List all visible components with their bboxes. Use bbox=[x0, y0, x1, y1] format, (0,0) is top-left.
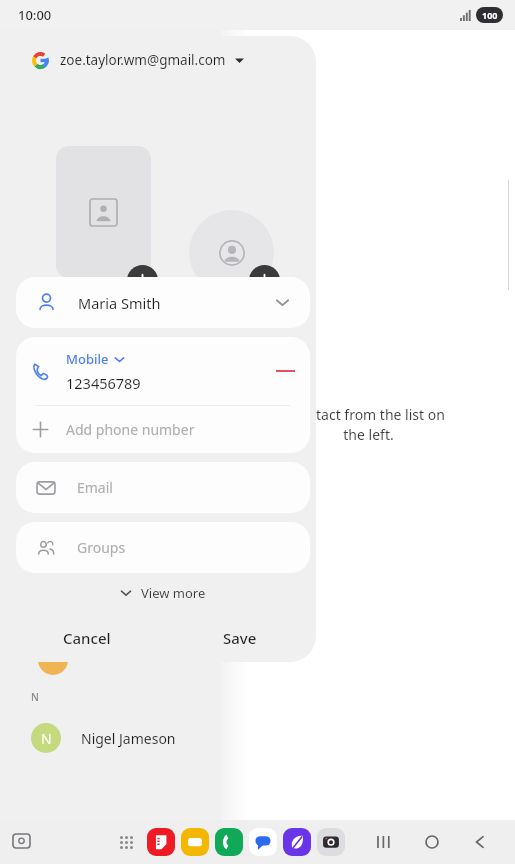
button[interactable]: App bbox=[249, 828, 277, 856]
staticText: Groups bbox=[77, 538, 126, 557]
button[interactable]: Maria Smith bbox=[16, 277, 310, 328]
staticText: Nigel Jameson bbox=[81, 729, 176, 748]
staticText: N bbox=[41, 729, 52, 748]
button[interactable]: Groups bbox=[16, 522, 310, 573]
button[interactable]: Mobile bbox=[16, 337, 310, 405]
button[interactable]: App bbox=[215, 828, 243, 856]
staticText: Add phone number bbox=[66, 420, 195, 439]
staticText: N bbox=[31, 690, 39, 704]
staticText: 100 bbox=[482, 9, 498, 21]
staticText: Mobile bbox=[66, 350, 109, 368]
button[interactable]: Recent apps preview bbox=[6, 827, 36, 857]
button[interactable]: Home bbox=[415, 825, 449, 859]
staticText: 10:00 bbox=[18, 6, 52, 24]
button[interactable]: Add phone number bbox=[16, 406, 310, 453]
staticText: Save bbox=[223, 628, 257, 648]
button[interactable]: Apps bbox=[111, 827, 141, 857]
staticText: Cancel bbox=[63, 628, 111, 648]
button[interactable]: App bbox=[147, 828, 175, 856]
button[interactable]: Add photo bbox=[127, 265, 158, 296]
button[interactable]: App bbox=[317, 828, 345, 856]
button[interactable]: Recents bbox=[367, 825, 401, 859]
button[interactable]: Add contact photo bbox=[56, 146, 151, 278]
button[interactable]: Back bbox=[463, 825, 497, 859]
button[interactable]: Save bbox=[163, 613, 316, 662]
staticText: zoe.taylor.wm@gmail.com bbox=[60, 51, 226, 69]
staticText: Email bbox=[77, 478, 113, 497]
staticText: View more bbox=[141, 584, 206, 602]
button[interactable]: Remove phone number bbox=[268, 354, 302, 388]
button[interactable]: N bbox=[0, 715, 221, 761]
button[interactable]: Cancel bbox=[10, 613, 163, 662]
staticText: Maria Smith bbox=[78, 293, 161, 313]
button[interactable]: Add avatar image bbox=[249, 265, 280, 296]
staticText: 123456789 bbox=[66, 373, 141, 393]
button[interactable]: View more bbox=[10, 573, 316, 613]
button[interactable]: Email bbox=[16, 462, 310, 513]
button[interactable]: Add avatar bbox=[189, 210, 274, 295]
button[interactable]: App bbox=[283, 828, 311, 856]
button[interactable]: zoe.taylor.wm@gmail.com bbox=[10, 36, 316, 84]
staticText: contact from the list on the left. bbox=[292, 405, 445, 445]
button[interactable]: App bbox=[181, 828, 209, 856]
